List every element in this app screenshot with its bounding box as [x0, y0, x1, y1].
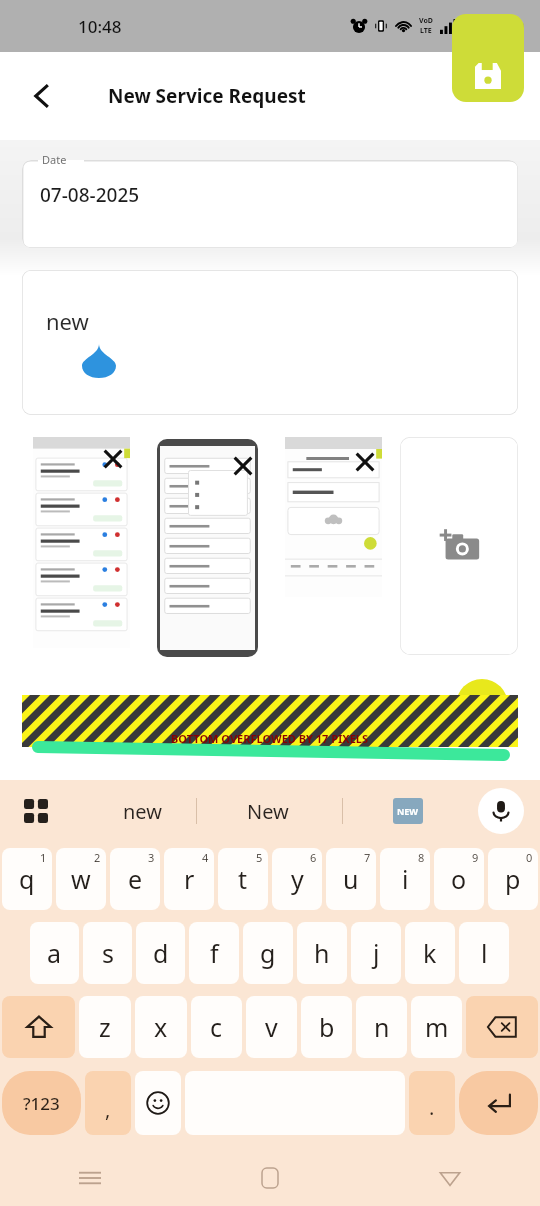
button[interactable]: l: [459, 922, 509, 984]
staticText: new: [123, 798, 162, 825]
staticText: 9: [472, 850, 479, 865]
button[interactable]: Attached screenshot 1: [33, 437, 130, 648]
button[interactable]: p: [488, 848, 538, 910]
staticText: 4: [202, 850, 209, 865]
staticText: h: [314, 936, 330, 970]
staticText: 6: [310, 850, 317, 865]
button[interactable]: Emoji: [135, 1071, 181, 1135]
staticText: j: [373, 936, 380, 970]
staticText: p: [505, 862, 521, 896]
button[interactable]: New: [208, 786, 328, 836]
button[interactable]: m: [411, 996, 462, 1058]
staticText: 5: [256, 850, 263, 865]
button[interactable]: new: [82, 786, 202, 836]
staticText: d: [153, 936, 169, 970]
button[interactable]: Enter: [459, 1071, 538, 1135]
staticText: g: [260, 936, 276, 970]
button[interactable]: s: [83, 922, 132, 984]
staticText: ,: [105, 1096, 111, 1123]
staticText: 07-08-2025: [40, 182, 140, 208]
button[interactable]: Backspace: [466, 996, 538, 1058]
button[interactable]: h: [297, 922, 347, 984]
staticText: VoD: [419, 16, 433, 26]
staticText: b: [319, 1010, 335, 1044]
button[interactable]: c: [191, 996, 242, 1058]
staticText: s: [102, 936, 114, 970]
button[interactable]: Recent apps: [0, 1150, 180, 1206]
button[interactable]: Voice input: [478, 788, 524, 834]
button[interactable]: new: [22, 270, 518, 415]
staticText: e: [128, 862, 143, 896]
staticText: 7: [364, 850, 371, 865]
staticText: w: [71, 862, 91, 896]
staticText: x: [154, 1010, 168, 1044]
staticText: l: [481, 936, 488, 970]
button[interactable]: Shift: [2, 996, 75, 1058]
button[interactable]: NEW: [356, 786, 460, 836]
button[interactable]: g: [243, 922, 293, 984]
button[interactable]: Attached screenshot 2: [157, 439, 258, 657]
button[interactable]: z: [79, 996, 131, 1058]
button[interactable]: Add photo: [400, 437, 518, 655]
button[interactable]: Remove attachment: [350, 447, 380, 477]
button[interactable]: Save: [452, 14, 524, 102]
button[interactable]: .: [409, 1071, 455, 1135]
button[interactable]: n: [356, 996, 407, 1058]
button[interactable]: u: [326, 848, 376, 910]
button[interactable]: e: [110, 848, 160, 910]
staticText: u: [343, 862, 359, 896]
staticText: 8: [418, 850, 425, 865]
button[interactable]: f: [189, 922, 239, 984]
button[interactable]: ?123: [2, 1071, 81, 1135]
button[interactable]: w: [56, 848, 106, 910]
staticText: LTE: [420, 26, 432, 36]
staticText: a: [47, 936, 62, 970]
staticText: ?123: [23, 1092, 60, 1115]
staticText: BOTTOM OVERFLOWED BY 17 PIXELS: [171, 731, 369, 746]
button[interactable]: r: [164, 848, 214, 910]
staticText: New: [247, 798, 289, 825]
button[interactable]: d: [136, 922, 185, 984]
staticText: New Service Request: [108, 83, 306, 109]
button[interactable]: k: [405, 922, 455, 984]
button[interactable]: i: [380, 848, 430, 910]
button[interactable]: Remove attachment: [98, 444, 128, 474]
button[interactable]: Remove attachment: [228, 451, 258, 481]
staticText: new: [46, 306, 89, 336]
button[interactable]: a: [30, 922, 79, 984]
button[interactable]: Back: [360, 1150, 540, 1206]
staticText: NEW: [397, 805, 419, 817]
staticText: .: [429, 1094, 435, 1121]
staticText: 0: [526, 850, 533, 865]
staticText: i: [402, 862, 409, 896]
staticText: c: [210, 1010, 223, 1044]
button[interactable]: Attached screenshot 3: [285, 437, 382, 597]
button[interactable]: x: [135, 996, 187, 1058]
button[interactable]: Back: [18, 72, 66, 120]
button[interactable]: t: [218, 848, 268, 910]
staticText: t: [238, 862, 248, 896]
staticText: v: [265, 1010, 278, 1044]
staticText: 2: [94, 850, 101, 865]
button[interactable]: b: [301, 996, 352, 1058]
staticText: 10:48: [78, 15, 122, 38]
staticText: r: [184, 862, 195, 896]
button[interactable]: 07-08-2025: [22, 160, 518, 248]
button[interactable]: j: [351, 922, 401, 984]
button[interactable]: o: [434, 848, 484, 910]
button[interactable]: ,: [85, 1071, 131, 1135]
staticText: Date: [42, 152, 67, 167]
staticText: y: [291, 862, 304, 896]
staticText: 1: [40, 850, 47, 865]
button[interactable]: Home: [180, 1150, 360, 1206]
button[interactable]: v: [246, 996, 297, 1058]
staticText: m: [425, 1010, 449, 1044]
staticText: k: [423, 936, 437, 970]
button[interactable]: y: [272, 848, 322, 910]
staticText: z: [99, 1010, 111, 1044]
button[interactable]: Keyboard menu: [14, 789, 58, 833]
staticText: n: [374, 1010, 390, 1044]
button[interactable]: q: [2, 848, 52, 910]
